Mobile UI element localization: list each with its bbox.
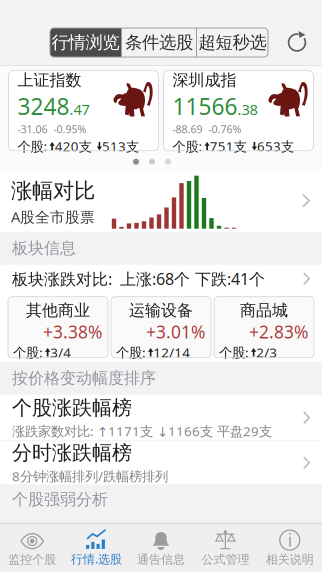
staticText: 分时涨跌幅榜 (12, 441, 132, 465)
staticText: 2/3 (256, 343, 277, 361)
staticText: 超短秒选 (198, 32, 266, 53)
staticText: 751支 (210, 137, 247, 155)
staticText: 420支 (55, 137, 92, 155)
staticText: 11566 (172, 91, 237, 121)
staticText: 行情.选股 (71, 551, 122, 567)
staticText: 653支 (257, 137, 294, 155)
button[interactable]: 深圳成指 (163, 71, 313, 151)
button[interactable]: 商品城 (214, 297, 314, 358)
button[interactable]: 超短秒选 (197, 28, 268, 57)
staticText: A股全市股票 (11, 207, 95, 226)
button[interactable]: 行情浏览 (50, 28, 121, 57)
button[interactable]: i (258, 524, 322, 572)
staticText: 公式管理 (201, 552, 249, 567)
staticText: 513支 (102, 137, 139, 155)
button[interactable]: 板块涨跌对比: 上涨:68个 下跌:41个 (0, 265, 322, 293)
button[interactable]: 个股涨跌幅榜 (0, 395, 322, 441)
staticText: 条件选股 (125, 32, 193, 53)
staticText: 3248 (17, 91, 69, 121)
staticText: +3.38% (43, 320, 102, 343)
staticText: -31.06 -0.95% (17, 122, 86, 136)
staticText: 相关说明 (266, 552, 314, 567)
staticText: 涨幅对比 (11, 178, 95, 204)
staticText: 个股涨跌幅榜 (12, 396, 132, 420)
staticText: 个股: (17, 137, 47, 155)
button[interactable]: 公式管理 (193, 524, 258, 572)
button[interactable]: 行情.选股 (64, 524, 129, 572)
staticText: 12/14 (153, 343, 190, 361)
staticText: 板块信息 (12, 238, 76, 258)
staticText: 商品城 (240, 301, 288, 320)
staticText: .47 (69, 99, 89, 119)
staticText: 深圳成指 (172, 70, 236, 90)
staticText: 个股: (172, 137, 202, 155)
staticText: 个股: (13, 343, 43, 361)
staticText: 3/4 (50, 343, 71, 361)
staticText: 通告信息 (137, 552, 185, 567)
button[interactable]: 分时涨跌幅榜 (0, 441, 322, 484)
staticText: 个股强弱分析 (12, 489, 108, 509)
staticText: 其他商业 (26, 301, 90, 320)
staticText: 按价格变动幅度排序 (12, 368, 156, 388)
staticText: 板块涨跌对比: 上涨:68个 下跌:41个 (12, 268, 265, 289)
button[interactable]: 通告信息 (129, 524, 193, 572)
staticText: .38 (237, 99, 257, 119)
staticText: +3.01% (146, 320, 205, 343)
staticText: 监控个股 (8, 552, 56, 567)
button[interactable]: 监控个股 (0, 524, 64, 572)
button[interactable]: Refresh (284, 29, 310, 55)
button[interactable]: 上证指数 (8, 71, 158, 151)
staticText: 上证指数 (17, 70, 81, 90)
button[interactable]: 运输设备 (111, 297, 211, 358)
button[interactable]: 涨幅对比 (0, 170, 322, 232)
staticText: i (288, 529, 292, 552)
staticText: -88.69 -0.76% (172, 122, 241, 136)
button[interactable]: 其他商业 (8, 297, 108, 358)
staticText: 个股: (116, 343, 146, 361)
staticText: +2.83% (249, 320, 308, 343)
staticText: 行情浏览 (51, 32, 119, 53)
button[interactable]: 条件选股 (122, 28, 196, 57)
staticText: 8分钟涨幅排列/跌幅榜排列 (12, 467, 168, 485)
staticText: 运输设备 (129, 301, 193, 320)
staticText: 涨跌家数对比: ↑1171支 ↓1166支 平盘29支 (12, 422, 272, 440)
staticText: 个股: (219, 343, 249, 361)
